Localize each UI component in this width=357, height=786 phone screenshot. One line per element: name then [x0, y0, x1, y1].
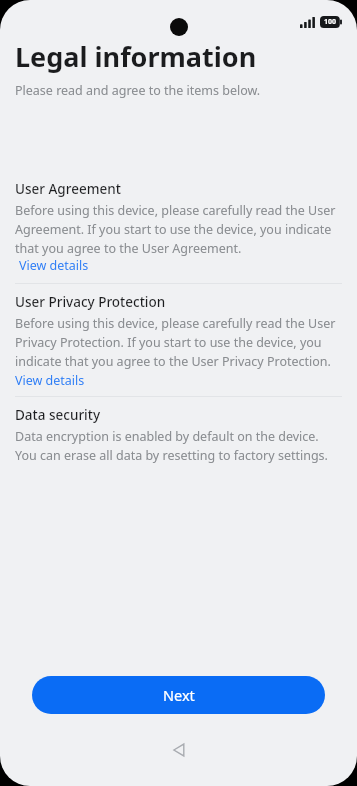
staticText: User Agreement: [15, 180, 121, 198]
button[interactable]: Before using this device, please careful…: [15, 315, 342, 388]
staticText: User Privacy Protection: [15, 293, 166, 311]
staticText: Data security: [15, 406, 101, 424]
staticText: Next: [163, 685, 195, 705]
staticText: 100: [324, 17, 337, 27]
button[interactable]: View details: [15, 256, 89, 275]
staticText: Please read and agree to the items below…: [15, 82, 261, 99]
staticText: Data encryption is enabled by default on…: [15, 428, 342, 463]
button[interactable]: Next: [32, 676, 325, 714]
staticText: Before using this device, please careful…: [15, 315, 342, 388]
staticText: View details: [19, 257, 89, 274]
button[interactable]: Back: [165, 736, 193, 764]
staticText: Before using this device, please careful…: [15, 202, 342, 256]
staticText: Legal information: [15, 38, 257, 75]
